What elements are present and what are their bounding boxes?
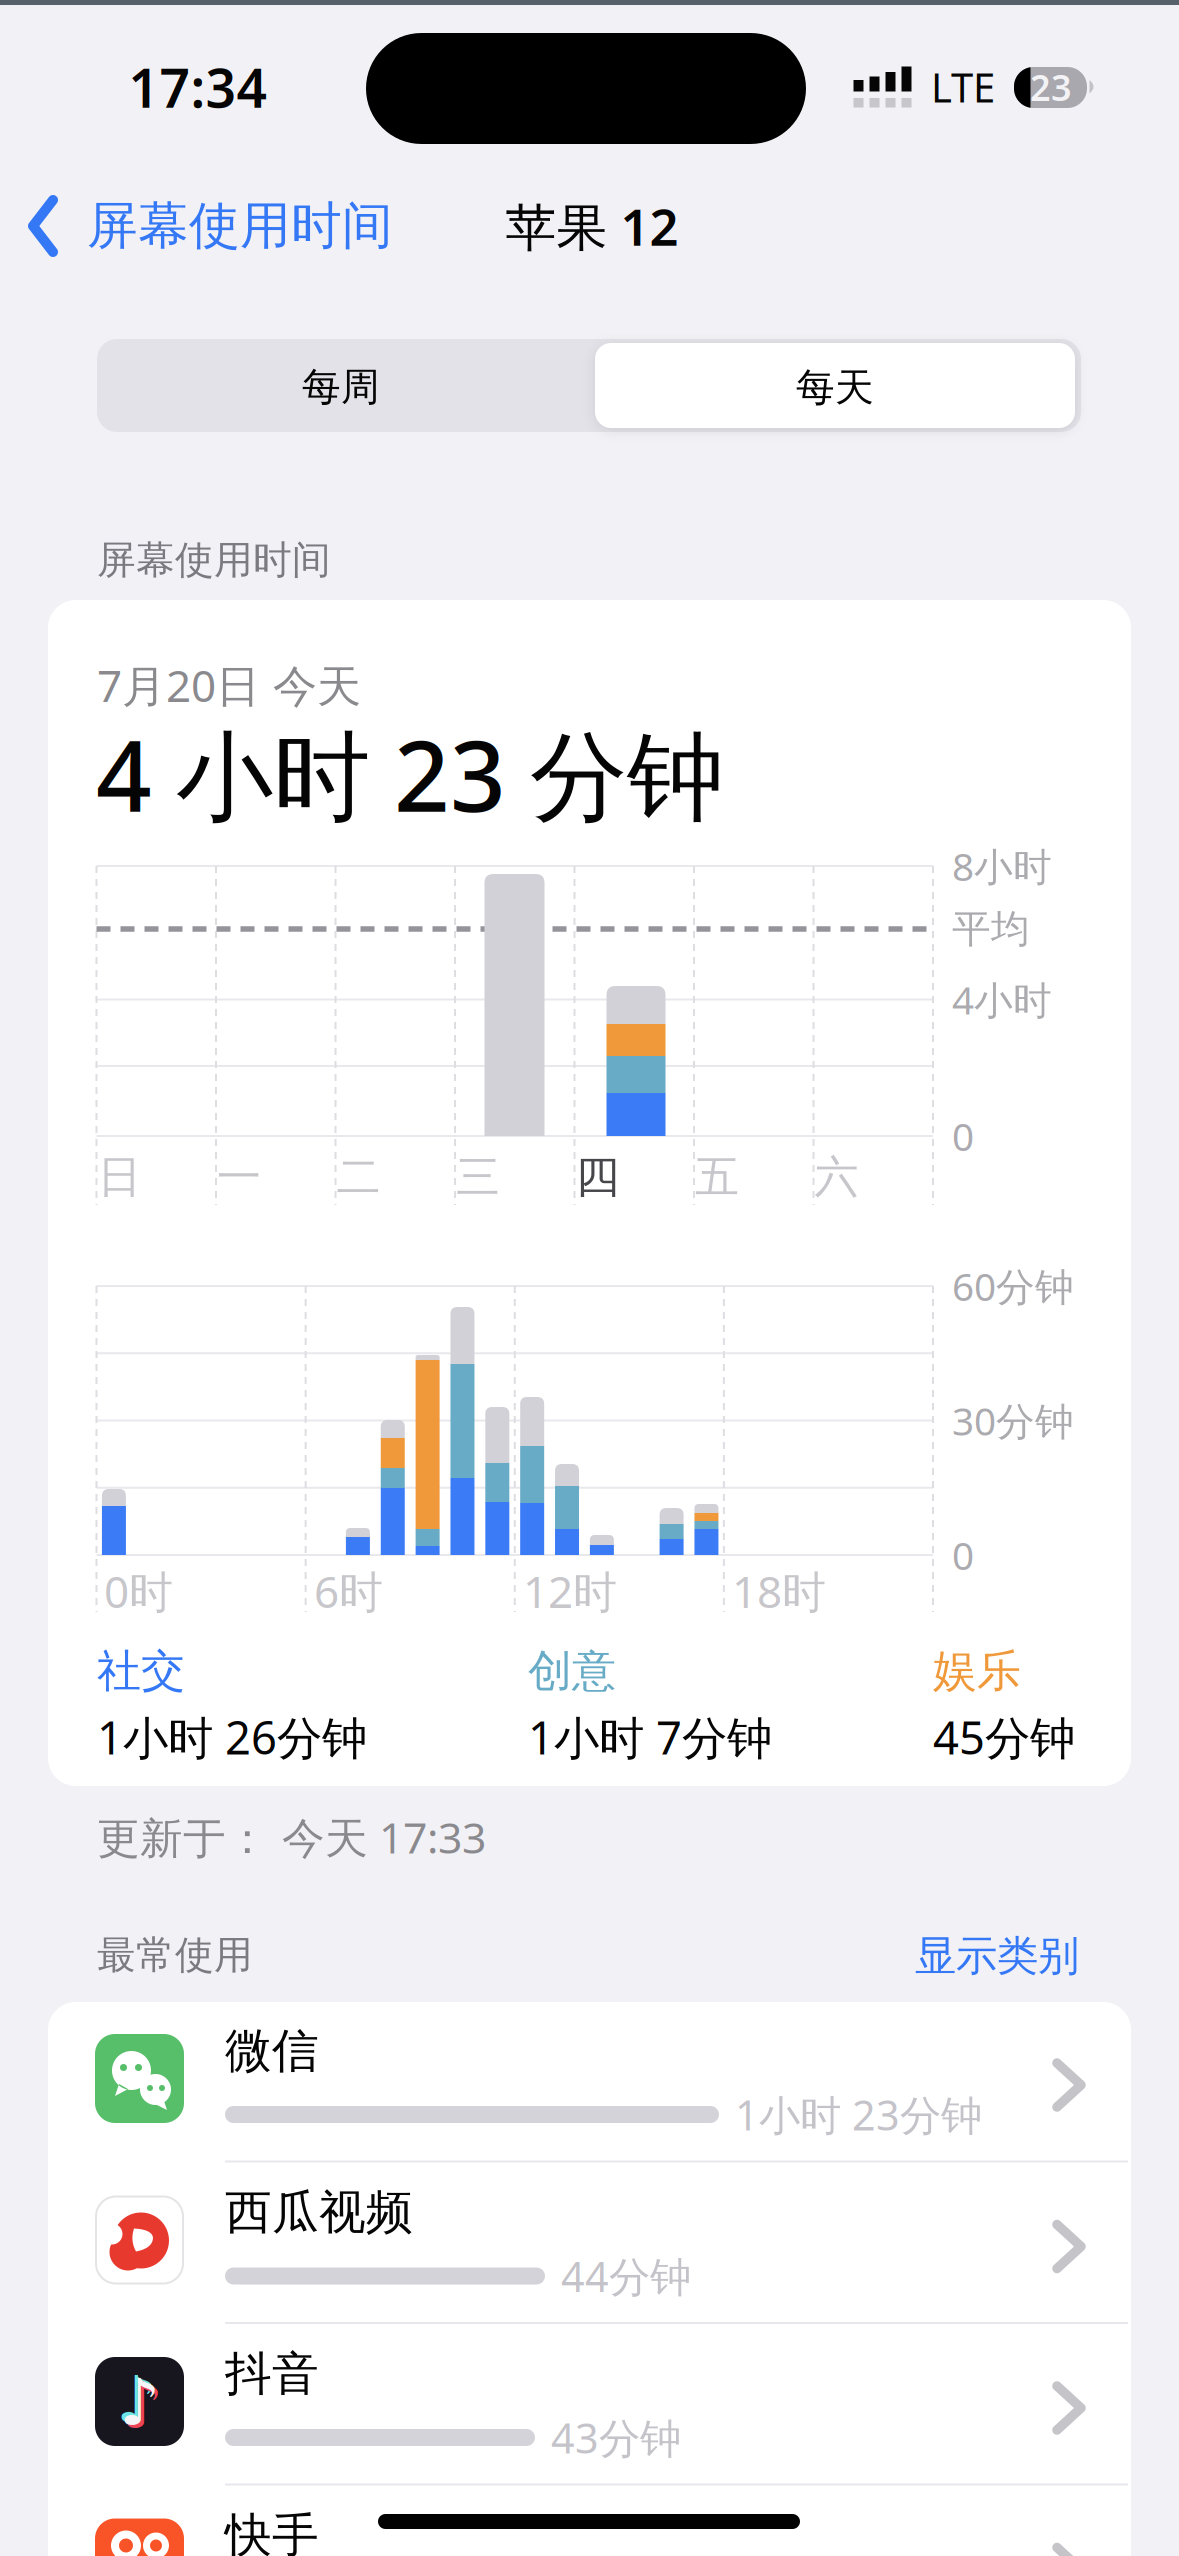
staticText: ♪ bbox=[122, 2369, 163, 2442]
staticText: 每天 bbox=[796, 364, 874, 411]
staticText: 一 bbox=[217, 1150, 261, 1204]
button[interactable]: 每天 bbox=[595, 343, 1075, 428]
staticText: 娱乐 bbox=[933, 1644, 1021, 1698]
staticText: 0时 bbox=[104, 1562, 173, 1620]
button[interactable]: 西瓜视频 bbox=[48, 2163, 1131, 2325]
staticText: 三 bbox=[456, 1150, 500, 1204]
staticText: 30分钟 bbox=[952, 1395, 1074, 1446]
staticText: 创意 bbox=[528, 1644, 616, 1698]
staticText: 17:34 bbox=[128, 52, 267, 122]
staticText: 8小时 bbox=[952, 840, 1052, 892]
staticText: 43分钟 bbox=[551, 2410, 681, 2465]
staticText: 23 bbox=[1030, 63, 1072, 111]
staticText: 0 bbox=[952, 1529, 974, 1581]
staticText: ♪ bbox=[116, 2363, 157, 2436]
staticText: 日 bbox=[97, 1150, 141, 1204]
button[interactable]: 显示类别 bbox=[679, 1955, 1079, 1957]
staticText: 44分钟 bbox=[561, 2249, 691, 2303]
button[interactable]: 返回 屏幕使用时间 bbox=[27, 196, 393, 256]
staticText: 西瓜视频 bbox=[225, 2184, 413, 2241]
staticText: 快手 bbox=[225, 2507, 319, 2556]
staticText: LTE bbox=[931, 60, 995, 113]
staticText: 60分钟 bbox=[952, 1260, 1074, 1312]
staticText: 更新于： 今天 17:33 bbox=[97, 1809, 486, 1865]
staticText: 四 bbox=[575, 1150, 619, 1204]
staticText: 0 bbox=[952, 1110, 974, 1162]
staticText: 1小时 23分钟 bbox=[735, 2087, 982, 2142]
staticText: 二 bbox=[336, 1150, 380, 1204]
staticText: 平均 bbox=[952, 905, 1030, 953]
staticText: 五 bbox=[695, 1150, 739, 1204]
staticText: 每周 bbox=[302, 363, 380, 411]
staticText: 12时 bbox=[523, 1562, 617, 1620]
staticText: 7月20日 今天 bbox=[97, 656, 361, 714]
staticText: 1小时 7分钟 bbox=[528, 1707, 772, 1767]
button[interactable]: 每周 bbox=[97, 339, 585, 432]
staticText: 1小时 26分钟 bbox=[97, 1707, 367, 1767]
staticText: 微信 bbox=[225, 2022, 319, 2080]
staticText: 18时 bbox=[732, 1562, 826, 1620]
button[interactable]: ♪ bbox=[48, 2325, 1131, 2486]
staticText: 4 小时 23 分钟 bbox=[96, 709, 724, 839]
staticText: 苹果 12 bbox=[505, 192, 678, 260]
staticText: 最常使用 bbox=[97, 1931, 253, 1979]
button[interactable]: 微信 bbox=[48, 2002, 1131, 2163]
staticText: 屏幕使用时间 bbox=[87, 195, 393, 257]
staticText: 社交 bbox=[97, 1644, 185, 1698]
button[interactable]: 快手 bbox=[48, 2486, 1131, 2556]
staticText: 抖音 bbox=[225, 2345, 319, 2403]
staticText: 45分钟 bbox=[933, 1707, 1075, 1767]
staticText: ♪ bbox=[119, 2366, 160, 2439]
staticText: 显示类别 bbox=[915, 1931, 1079, 1981]
staticText: 六 bbox=[814, 1150, 858, 1204]
staticText: 屏幕使用时间 bbox=[97, 536, 331, 584]
staticText: 6时 bbox=[314, 1562, 383, 1620]
staticText: 4小时 bbox=[952, 974, 1052, 1025]
